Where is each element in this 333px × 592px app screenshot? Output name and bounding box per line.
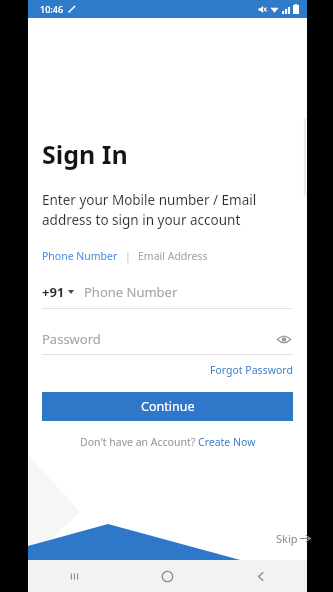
staticText: +91 bbox=[42, 283, 65, 301]
button[interactable]: Show password bbox=[275, 330, 293, 348]
staticText: Password bbox=[42, 330, 101, 348]
staticText: Phone Number bbox=[84, 283, 178, 301]
button[interactable]: Skip bbox=[276, 531, 311, 546]
button[interactable]: Forgot Password bbox=[210, 363, 293, 377]
button[interactable]: Continue bbox=[42, 392, 293, 421]
staticText: Skip bbox=[276, 531, 298, 546]
staticText: Continue bbox=[141, 398, 195, 415]
button[interactable]: Phone Number bbox=[42, 249, 118, 263]
staticText: Phone Number bbox=[42, 249, 118, 263]
button[interactable]: Create Now bbox=[198, 435, 256, 449]
staticText: Enter your Mobile number / Email address… bbox=[42, 191, 257, 229]
staticText: | bbox=[125, 249, 131, 263]
button[interactable]: Password bbox=[42, 330, 275, 348]
staticText: Don't have an Account? bbox=[80, 435, 198, 449]
button[interactable]: Email Address bbox=[138, 249, 208, 263]
staticText: Forgot Password bbox=[210, 363, 293, 377]
button[interactable]: Back bbox=[214, 560, 307, 592]
button[interactable]: Recents bbox=[28, 560, 121, 592]
button[interactable]: Home bbox=[121, 560, 214, 592]
staticText: Email Address bbox=[138, 249, 208, 263]
staticText: 10:46 bbox=[40, 3, 64, 15]
button[interactable]: +91 bbox=[42, 280, 293, 309]
staticText: Sign In bbox=[42, 137, 128, 171]
staticText: Create Now bbox=[198, 435, 256, 449]
